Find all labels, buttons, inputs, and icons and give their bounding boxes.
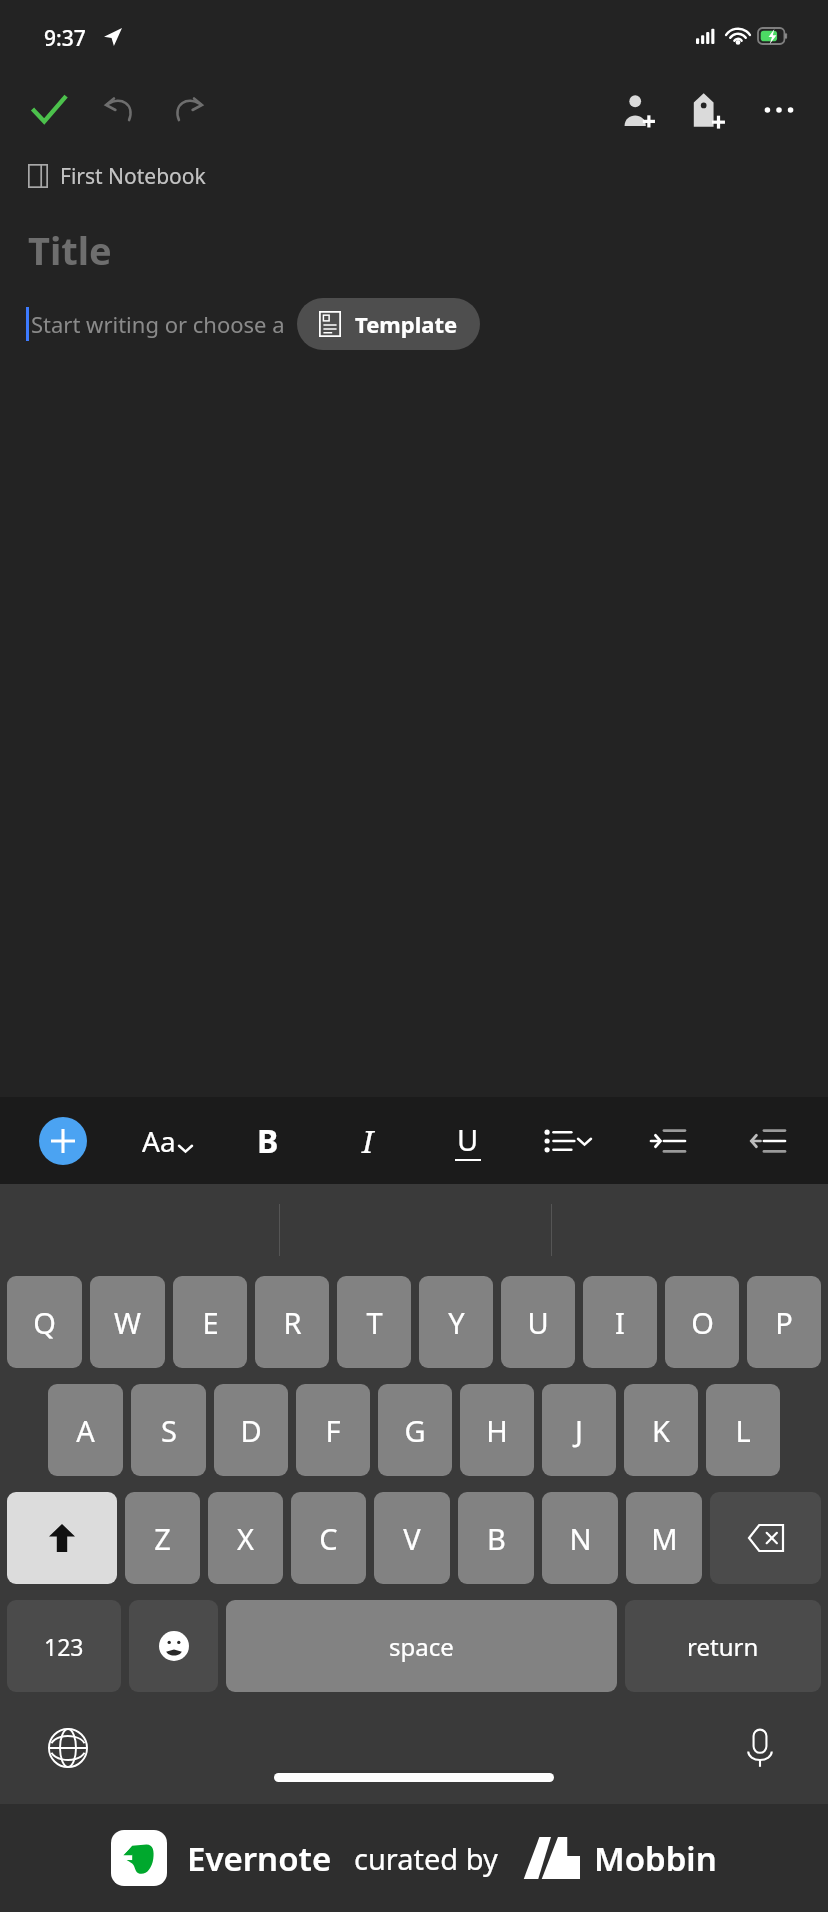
staticText: S: [161, 1411, 177, 1450]
staticText: F: [325, 1411, 341, 1450]
button[interactable]: U: [501, 1276, 575, 1368]
button[interactable]: X: [208, 1492, 283, 1584]
button[interactable]: Italic: [318, 1097, 418, 1184]
button[interactable]: F: [296, 1384, 370, 1476]
button[interactable]: Shift: [7, 1492, 117, 1584]
staticText: L: [735, 1411, 751, 1450]
staticText: curated by: [354, 1839, 498, 1878]
button[interactable]: Add: [10, 1117, 116, 1165]
button[interactable]: Q: [7, 1276, 82, 1368]
button[interactable]: return: [625, 1600, 821, 1692]
button[interactable]: W: [90, 1276, 165, 1368]
button[interactable]: Z: [125, 1492, 200, 1584]
staticText: Q: [33, 1303, 56, 1342]
staticText: N: [569, 1519, 592, 1558]
staticText: T: [366, 1303, 383, 1342]
button[interactable]: E: [173, 1276, 247, 1368]
staticText: Z: [154, 1519, 171, 1558]
button[interactable]: Emoji: [129, 1600, 218, 1692]
button[interactable]: H: [460, 1384, 534, 1476]
button[interactable]: space: [226, 1600, 617, 1692]
staticText: Aa: [142, 1122, 176, 1160]
staticText: 123: [44, 1631, 84, 1662]
button[interactable]: O: [665, 1276, 739, 1368]
staticText: First Notebook: [60, 162, 206, 191]
button[interactable]: G: [378, 1384, 452, 1476]
button[interactable]: D: [214, 1384, 288, 1476]
button[interactable]: A: [48, 1384, 123, 1476]
button[interactable]: Add attachment: [674, 75, 744, 145]
staticText: U: [527, 1303, 549, 1342]
staticText: B: [257, 1119, 279, 1163]
staticText: E: [202, 1303, 219, 1342]
button[interactable]: Bold: [217, 1097, 318, 1184]
staticText: I: [615, 1303, 625, 1342]
staticText: Start writing or choose a: [31, 309, 285, 339]
staticText: Title: [28, 224, 112, 276]
button[interactable]: Indent: [618, 1097, 718, 1184]
staticText: H: [486, 1411, 508, 1450]
button[interactable]: More options: [744, 75, 814, 145]
staticText: Y: [448, 1303, 465, 1342]
button[interactable]: P: [747, 1276, 821, 1368]
button[interactable]: I: [583, 1276, 657, 1368]
staticText: W: [114, 1303, 141, 1342]
button[interactable]: Backspace: [710, 1492, 821, 1584]
staticText: C: [319, 1519, 338, 1558]
button[interactable]: C: [291, 1492, 366, 1584]
button[interactable]: N: [542, 1492, 618, 1584]
button[interactable]: S: [131, 1384, 206, 1476]
button[interactable]: K: [624, 1384, 698, 1476]
staticText: R: [283, 1303, 302, 1342]
button[interactable]: Y: [419, 1276, 493, 1368]
button[interactable]: Bullet list: [518, 1097, 618, 1184]
button[interactable]: Dictation: [732, 1720, 788, 1776]
button[interactable]: Done: [14, 75, 84, 145]
button[interactable]: R: [255, 1276, 329, 1368]
staticText: O: [691, 1303, 714, 1342]
staticText: A: [76, 1411, 95, 1450]
staticText: P: [775, 1303, 793, 1342]
staticText: Template: [355, 309, 458, 339]
staticText: X: [237, 1519, 254, 1558]
button[interactable]: Add people: [604, 75, 674, 145]
button[interactable]: Change keyboard: [40, 1720, 96, 1776]
staticText: Mobbin: [594, 1836, 717, 1881]
staticText: K: [652, 1411, 670, 1450]
button[interactable]: V: [374, 1492, 450, 1584]
staticText: D: [240, 1411, 262, 1450]
button[interactable]: B: [458, 1492, 534, 1584]
button[interactable]: T: [337, 1276, 411, 1368]
staticText: G: [404, 1411, 426, 1450]
button[interactable]: L: [706, 1384, 780, 1476]
staticText: U: [457, 1120, 479, 1159]
staticText: return: [687, 1630, 759, 1663]
staticText: V: [403, 1519, 421, 1558]
button[interactable]: Undo: [84, 75, 154, 145]
staticText: space: [389, 1630, 454, 1663]
button[interactable]: Redo: [154, 75, 224, 145]
staticText: J: [575, 1411, 583, 1450]
button[interactable]: 123: [7, 1600, 121, 1692]
staticText: 9:37: [44, 24, 86, 53]
staticText: Evernote: [187, 1836, 332, 1881]
staticText: I: [362, 1120, 374, 1162]
button[interactable]: Outdent: [718, 1097, 818, 1184]
button[interactable]: First Notebook: [0, 148, 828, 204]
staticText: M: [651, 1519, 678, 1558]
staticText: B: [487, 1519, 506, 1558]
button[interactable]: Underline: [418, 1097, 518, 1184]
button[interactable]: Text style: [116, 1097, 217, 1184]
button[interactable]: J: [542, 1384, 616, 1476]
button[interactable]: M: [626, 1492, 702, 1584]
button[interactable]: Template: [297, 298, 480, 350]
